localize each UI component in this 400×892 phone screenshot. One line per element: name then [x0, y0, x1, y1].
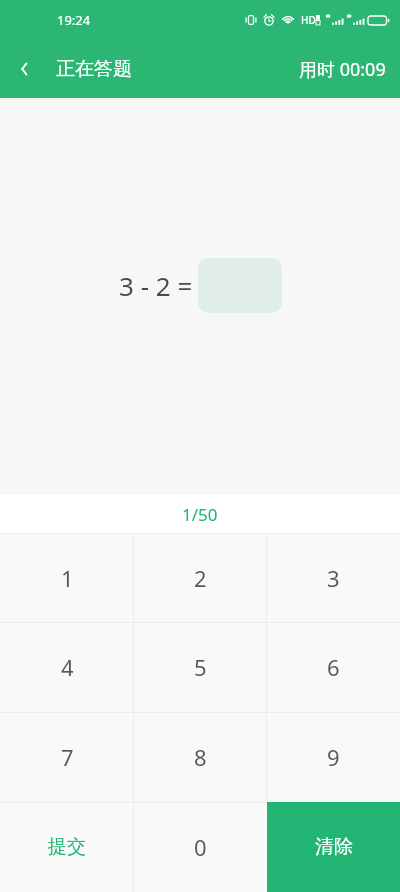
staticText: 3 - 2 = — [119, 268, 193, 303]
staticText: 3 — [327, 563, 340, 593]
staticText: 清除 — [315, 835, 353, 859]
staticText: 7 — [61, 742, 74, 772]
staticText: 19:24 — [57, 11, 91, 29]
staticText: 1/50 — [182, 503, 218, 526]
staticText: 用时 00:09 — [299, 57, 386, 82]
staticText: 4 — [61, 652, 74, 682]
button[interactable]: 1 — [0, 533, 134, 622]
staticText: 6 — [327, 652, 340, 682]
button[interactable]: Back — [0, 45, 48, 93]
button[interactable]: 提交 — [0, 802, 134, 892]
button[interactable]: 3 — [267, 533, 400, 622]
button[interactable]: 7 — [0, 712, 134, 802]
button[interactable]: 4 — [0, 622, 134, 712]
staticText: 8 — [194, 742, 207, 772]
staticText: HD — [301, 13, 316, 27]
button[interactable]: 6 — [267, 622, 400, 712]
staticText: 1 — [61, 563, 74, 593]
button[interactable]: 5 — [134, 622, 267, 712]
button[interactable]: 8 — [134, 712, 267, 802]
staticText: 提交 — [48, 835, 86, 859]
button[interactable]: 2 — [134, 533, 267, 622]
button[interactable]: 9 — [267, 712, 400, 802]
staticText: 2 — [194, 563, 207, 593]
button[interactable]: 0 — [134, 802, 267, 892]
button[interactable]: 清除 — [267, 802, 400, 892]
staticText: 5 — [194, 652, 207, 682]
staticText: 9 — [327, 742, 340, 772]
staticText: 0 — [194, 832, 207, 862]
staticText: 正在答题 — [56, 57, 132, 81]
